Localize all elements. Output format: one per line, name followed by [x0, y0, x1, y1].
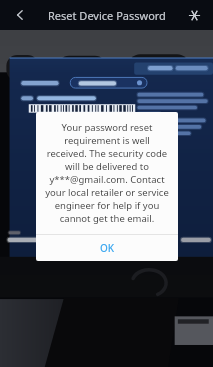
button[interactable]: OK: [36, 235, 178, 261]
button[interactable]: Back: [7, 2, 33, 28]
button[interactable]: Bluetooth: [182, 3, 206, 27]
staticText: Your password reset requirement is well …: [43, 121, 171, 225]
staticText: OK: [100, 241, 115, 255]
staticText: Reset Device Password: [48, 8, 166, 23]
